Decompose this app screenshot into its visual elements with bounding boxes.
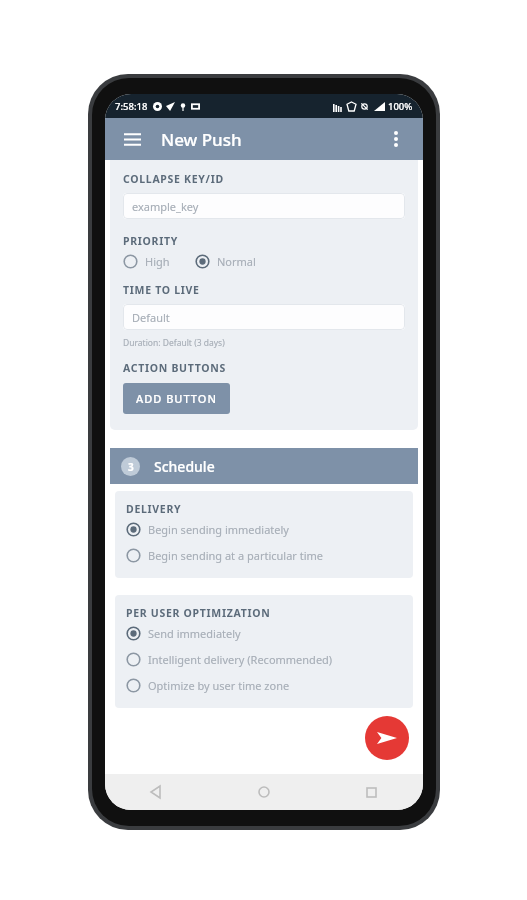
staticText: TIME TO LIVE [123,283,200,297]
staticText: Duration: Default (3 days) [123,337,225,349]
button[interactable]: High [123,252,195,271]
button[interactable]: Back [143,778,171,806]
button[interactable]: Open navigation menu [117,124,147,154]
button[interactable]: Default [123,304,405,330]
button[interactable]: Normal [195,252,256,271]
button[interactable]: Send immediately [126,624,241,643]
staticText: 100% [388,100,413,113]
button[interactable]: Intelligent delivery (Recommended) [126,650,333,669]
button[interactable]: Recent apps [357,778,385,806]
button[interactable]: ADD BUTTON [123,383,230,414]
staticText: ACTION BUTTONS [123,361,226,375]
staticText: PRIORITY [123,234,179,248]
staticText: Optimize by user time zone [148,678,290,693]
staticText: Intelligent delivery (Recommended) [148,652,333,667]
staticText: New Push [161,128,242,151]
staticText: Send immediately [148,626,241,641]
button[interactable]: 3 [110,448,418,484]
button[interactable]: Begin sending at a particular time [126,546,324,565]
staticText: Schedule [154,457,215,476]
button[interactable]: Send push notification [365,716,409,760]
staticText: Begin sending immediately [148,522,289,537]
staticText: 3 [128,460,134,474]
staticText: 7:58:18 [115,100,148,113]
staticText: DELIVERY [126,502,182,516]
staticText: ADD BUTTON [136,391,217,406]
staticText: example_key [132,199,199,214]
staticText: Normal [217,254,256,269]
button[interactable]: Optimize by user time zone [126,676,290,695]
button[interactable]: Begin sending immediately [126,520,289,539]
staticText: Begin sending at a particular time [148,548,324,563]
button[interactable]: example_key [123,193,405,219]
button[interactable]: Home [250,778,278,806]
staticText: PER USER OPTIMIZATION [126,606,271,620]
staticText: High [145,254,170,269]
button[interactable]: More options [381,124,411,154]
staticText: COLLAPSE KEY/ID [123,172,224,186]
staticText: Default [132,310,170,325]
